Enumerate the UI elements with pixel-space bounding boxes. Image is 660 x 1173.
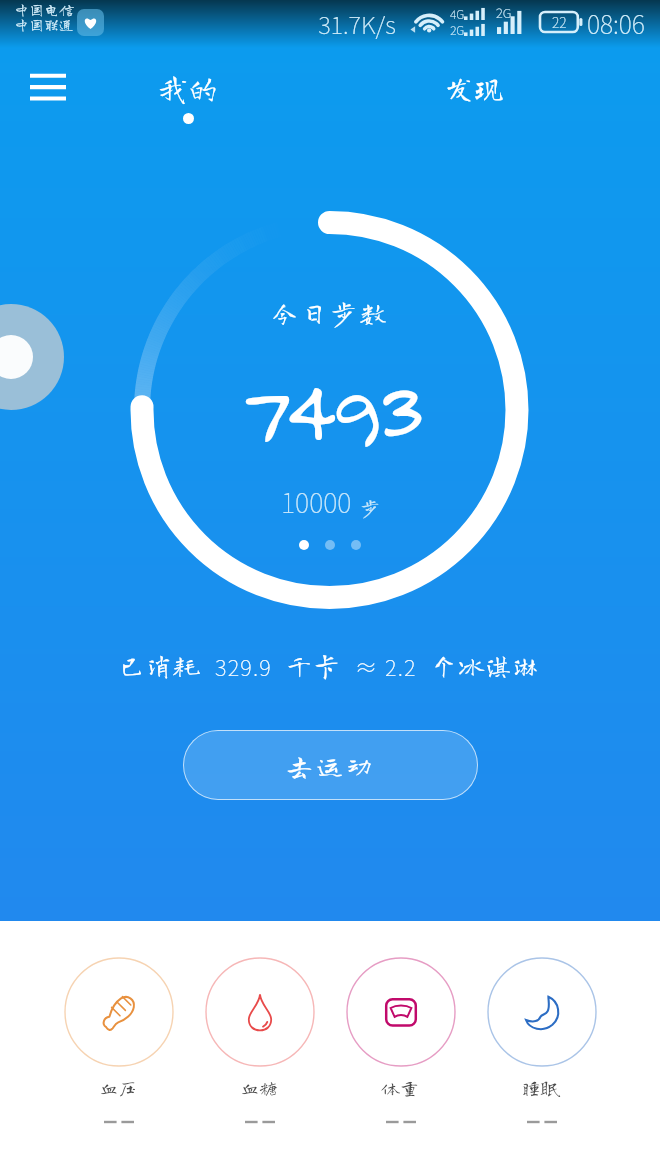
button[interactable]: 睡眠 [471, 921, 612, 1124]
staticText: 体重 [381, 1078, 420, 1097]
button[interactable]: 血压 [48, 921, 189, 1124]
staticText: 22 [552, 12, 567, 32]
button[interactable]: 发现 [427, 48, 521, 124]
staticText: 今日步数 [271, 299, 389, 326]
staticText: 去运动 [286, 752, 376, 779]
button[interactable]: App notification [77, 9, 104, 36]
button[interactable]: 血糖 [189, 921, 330, 1124]
staticText: 中国电信 [14, 2, 75, 17]
staticText: 发现 [444, 73, 504, 103]
staticText: ≈ [355, 650, 385, 682]
staticText: 31.7K/s [318, 6, 396, 41]
staticText: 2.2 [385, 650, 417, 682]
button[interactable]: 去运动 [183, 730, 478, 800]
staticText: 血压 [99, 1078, 138, 1097]
staticText: 2G [496, 3, 512, 22]
staticText: 个冰淇淋 [417, 652, 541, 678]
staticText: 睡眠 [522, 1078, 561, 1097]
staticText: 7493 [240, 356, 421, 463]
staticText: 步 [360, 497, 380, 517]
staticText: 我的 [158, 73, 218, 103]
button[interactable]: 我的 [141, 48, 235, 124]
button[interactable]: 体重 [330, 921, 471, 1124]
staticText: 329.9 [215, 650, 272, 682]
staticText: 10000 [281, 482, 352, 521]
staticText: 血糖 [240, 1078, 279, 1097]
staticText: 4G [450, 5, 465, 22]
staticText: 2G [450, 21, 465, 38]
staticText: 08:06 [587, 5, 645, 41]
staticText: 千卡 [272, 652, 355, 678]
staticText: 已消耗 [119, 652, 215, 678]
button[interactable]: Menu [12, 53, 84, 119]
staticText: 中国联通 [14, 17, 75, 32]
